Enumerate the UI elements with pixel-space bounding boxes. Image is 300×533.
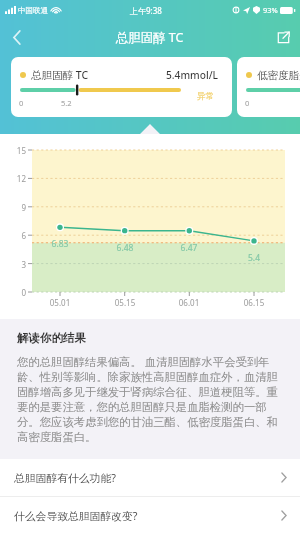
staticText: 0 [11,287,26,298]
staticText: 总胆固醇有什么功能? [14,470,116,485]
staticText: 0 [19,98,24,108]
staticText: 05.15 [108,297,142,308]
staticText: 06.15 [237,297,271,308]
staticText: 12 [11,173,26,184]
staticText: 93% [263,5,278,15]
button[interactable]: 总胆固醇有什么功能? [0,459,300,496]
button[interactable]: 低密度脂蛋白 LDL [237,57,300,117]
staticText: 异常 [197,91,214,102]
staticText: 6 [11,230,26,241]
staticText: 05.01 [43,297,77,308]
staticText: 0 [245,98,250,108]
staticText: 6.83 [46,238,74,250]
button[interactable]: 总胆固醇 TC [11,57,232,117]
staticText: 上午9:38 [130,5,162,16]
staticText: 什么会导致总胆固醇改变? [14,508,138,523]
staticText: 9 [11,202,26,213]
staticText: 低密度脂蛋白 LDL [257,68,300,82]
staticText: 15 [11,145,26,156]
staticText: 中国联通 [18,6,48,15]
staticText: 总胆固醇 TC [31,68,89,82]
button[interactable]: Share [266,20,300,54]
staticText: 您的总胆固醇结果偏高。 血清胆固醇水平会受到年龄、性别等影响。除家族性高胆固醇血… [17,354,284,444]
staticText: 06.01 [172,297,206,308]
staticText: 3 [11,259,26,270]
staticText: 5.4mmol/L [166,68,219,82]
staticText: 5.2 [61,98,72,108]
staticText: 6.48 [111,242,139,254]
staticText: 总胆固醇 TC [116,29,184,46]
button[interactable]: Back [0,20,34,54]
staticText: 5.4 [240,252,268,264]
button[interactable]: 什么会导致总胆固醇改变? [0,497,300,533]
staticText: 6.47 [175,242,203,254]
staticText: 解读你的结果 [17,331,86,345]
